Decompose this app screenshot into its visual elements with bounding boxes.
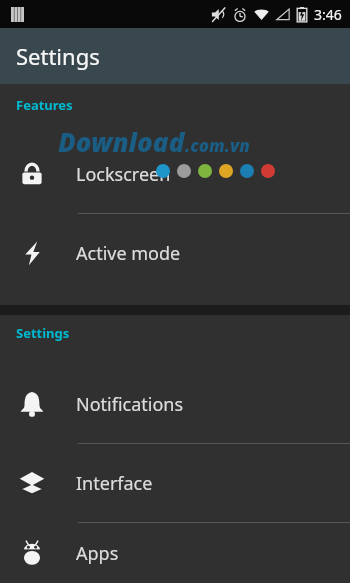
staticText: .com.vn <box>185 134 250 157</box>
button[interactable]: Active mode <box>0 214 350 292</box>
other: Lockscreen <box>19 161 45 187</box>
staticText: Notifications <box>76 392 184 417</box>
button[interactable]: Interface <box>0 444 350 522</box>
button[interactable]: Lockscreen <box>0 135 350 213</box>
other: Notifications <box>19 391 45 417</box>
staticText: Settings <box>16 324 70 342</box>
other: Active mode <box>19 240 45 266</box>
staticText: Features <box>16 96 73 114</box>
other: Apps <box>19 540 45 566</box>
staticText: Apps <box>76 541 119 566</box>
button[interactable]: Notifications <box>0 365 350 443</box>
staticText: Active mode <box>76 241 181 266</box>
other: Interface <box>19 470 45 496</box>
staticText: Lockscreen <box>76 162 171 187</box>
staticText: Download <box>58 124 185 159</box>
staticText: Interface <box>76 471 153 496</box>
staticText: Settings <box>16 41 100 71</box>
staticText: 3:46 <box>314 5 342 24</box>
button[interactable]: Apps <box>0 523 350 583</box>
